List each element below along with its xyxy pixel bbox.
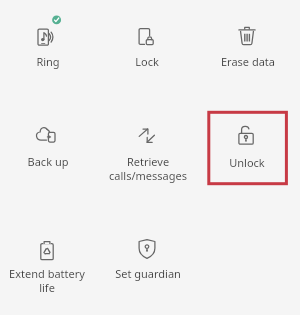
staticText: Unlock [199,155,295,170]
staticText: Ring [0,54,96,69]
staticText: Back up [0,154,96,169]
button[interactable]: Back up [0,121,96,173]
button[interactable]: Extend battery life [0,235,95,300]
button[interactable]: Unlock [199,122,295,174]
button[interactable]: Retrieve [100,122,196,188]
button[interactable]: Lock device [99,23,195,73]
staticText: Retrieve calls/messages [100,154,196,184]
button[interactable]: Set guardian [100,235,196,285]
staticText: Extend battery life [0,266,95,296]
button[interactable]: Erase data [200,22,296,73]
staticText: Set guardian [100,266,196,281]
staticText: Erase data [200,54,296,69]
staticText: Lock [99,54,195,69]
button[interactable]: Ring device [0,23,96,73]
